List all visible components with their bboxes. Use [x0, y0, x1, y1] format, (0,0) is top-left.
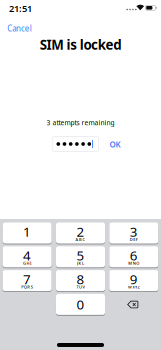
- staticText: 21:51: [9, 2, 32, 15]
- staticText: 2: [76, 223, 84, 240]
- staticText: 5: [76, 246, 84, 264]
- button[interactable]: 8: [56, 270, 105, 292]
- button[interactable]: 5: [56, 246, 105, 268]
- staticText: SIM is locked: [40, 36, 121, 53]
- button[interactable]: 4: [3, 246, 52, 268]
- staticText: 4: [23, 246, 31, 264]
- staticText: 0: [76, 295, 84, 313]
- button[interactable]: 9: [109, 270, 158, 292]
- staticText: 1: [23, 223, 31, 240]
- staticText: 3 attempts remaining: [46, 118, 114, 127]
- button[interactable]: 6: [109, 246, 158, 268]
- staticText: GHI: [23, 260, 31, 266]
- staticText: 9: [130, 270, 138, 288]
- button[interactable]: 2: [56, 222, 105, 244]
- staticText: WXYZ: [128, 284, 140, 290]
- staticText: 7: [23, 270, 31, 288]
- staticText: DEF: [130, 237, 138, 242]
- staticText: MNO: [128, 260, 139, 266]
- staticText: JKL: [77, 260, 84, 266]
- staticText: Cancel: [7, 23, 32, 34]
- button[interactable]: 1: [3, 222, 52, 244]
- button[interactable]: Delete: [108, 293, 157, 315]
- button[interactable]: 7: [3, 270, 52, 292]
- staticText: OK: [109, 139, 120, 150]
- staticText: ABC: [75, 237, 85, 242]
- staticText: TUV: [76, 284, 84, 290]
- staticText: 3: [130, 223, 138, 240]
- staticText: 8: [76, 270, 84, 288]
- button[interactable]: Cancel: [7, 23, 32, 34]
- staticText: PQRS: [21, 284, 33, 290]
- button[interactable]: 0: [56, 293, 105, 315]
- staticText: 6: [130, 246, 138, 264]
- button[interactable]: OK: [109, 139, 120, 150]
- button[interactable]: 3: [109, 222, 158, 244]
